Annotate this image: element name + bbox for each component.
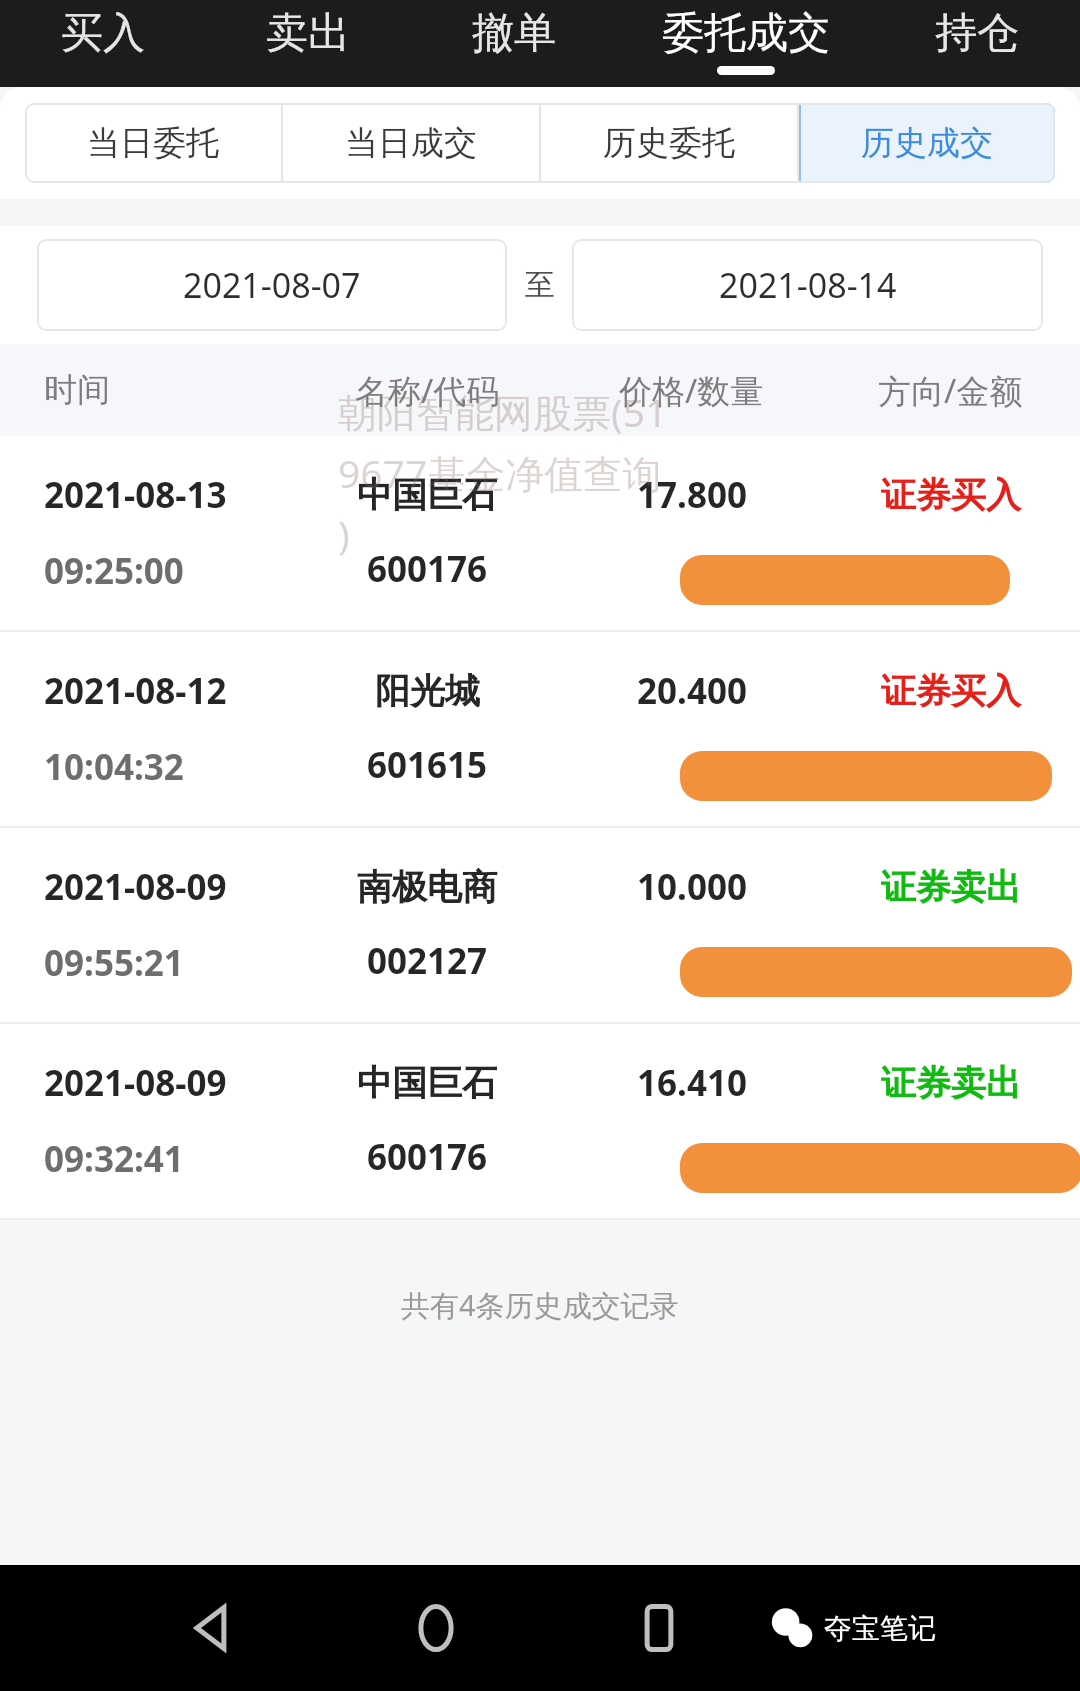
- button[interactable]: Back: [100, 1565, 324, 1691]
- staticText: 当日委托: [87, 122, 219, 164]
- staticText: [687, 1135, 697, 1183]
- button[interactable]: Recents: [547, 1565, 770, 1691]
- staticText: 撤单: [472, 7, 556, 60]
- staticText: 600176: [367, 545, 488, 593]
- staticText: 2021-08-12: [44, 667, 227, 715]
- staticText: 卖出: [266, 7, 350, 60]
- button[interactable]: 当日成交: [283, 103, 539, 183]
- staticText: 时间: [44, 369, 110, 411]
- staticText: 中国巨石: [357, 1061, 497, 1105]
- staticText: 至: [525, 266, 555, 304]
- staticText: 10.000: [637, 863, 747, 911]
- button[interactable]: 买入: [0, 0, 205, 87]
- staticText: 2021-08-13: [44, 471, 227, 519]
- staticText: 601615: [367, 741, 488, 789]
- staticText: [946, 545, 956, 593]
- staticText: 09:25:00: [44, 547, 184, 595]
- button[interactable]: 委托成交: [617, 0, 874, 87]
- staticText: 09:55:21: [44, 939, 184, 987]
- staticText: [687, 743, 697, 791]
- staticText: 夺宝笔记: [824, 1611, 936, 1646]
- staticText: 2021-08-09: [44, 863, 227, 911]
- staticText: [946, 937, 956, 985]
- staticText: 朝阳智能网股票(51: [338, 385, 668, 438]
- button[interactable]: 2021-08-14: [572, 239, 1043, 331]
- staticText: 历史成交: [861, 122, 993, 164]
- button[interactable]: 历史委托: [541, 103, 797, 183]
- staticText: 20.400: [637, 667, 747, 715]
- staticText: 2021-08-07: [183, 262, 361, 308]
- staticText: 证券卖出: [881, 865, 1021, 909]
- button[interactable]: 持仓: [874, 0, 1080, 87]
- staticText: [946, 741, 956, 789]
- staticText: 证券买入: [881, 669, 1021, 713]
- staticText: 共有4条历史成交记录: [401, 1285, 679, 1325]
- staticText: 10:04:32: [44, 743, 184, 791]
- button[interactable]: 卖出: [205, 0, 411, 87]
- staticText: [687, 939, 697, 987]
- staticText: 证券卖出: [881, 1061, 1021, 1105]
- staticText: [687, 547, 697, 595]
- staticText: 方向/金额: [878, 368, 1023, 413]
- staticText: 2021-08-14: [719, 262, 897, 308]
- staticText: 17.800: [637, 471, 747, 519]
- staticText: 2021-08-09: [44, 1059, 227, 1107]
- staticText: 持仓: [935, 7, 1019, 60]
- staticText: 9677基金净值查询: [338, 446, 662, 499]
- button[interactable]: 2021-08-07: [37, 239, 507, 331]
- staticText: 证券买入: [881, 473, 1021, 517]
- staticText: 价格/数量: [619, 368, 764, 413]
- button[interactable]: 撤单: [411, 0, 617, 87]
- button[interactable]: 当日委托: [25, 103, 281, 183]
- staticText: 中国巨石: [357, 473, 497, 517]
- staticText: 名称/代码: [355, 368, 500, 413]
- staticText: 历史委托: [603, 122, 735, 164]
- staticText: ): [338, 507, 350, 560]
- staticText: [946, 1133, 956, 1181]
- button[interactable]: 历史成交: [799, 103, 1055, 183]
- staticText: 09:32:41: [44, 1135, 184, 1183]
- button[interactable]: Home: [324, 1565, 547, 1691]
- staticText: 16.410: [637, 1059, 747, 1107]
- staticText: 600176: [367, 1133, 488, 1181]
- staticText: 002127: [367, 937, 488, 985]
- staticText: 南极电商: [357, 865, 497, 909]
- staticText: 当日成交: [345, 122, 477, 164]
- staticText: 买入: [61, 7, 145, 60]
- staticText: 委托成交: [662, 7, 830, 60]
- staticText: 阳光城: [375, 669, 480, 713]
